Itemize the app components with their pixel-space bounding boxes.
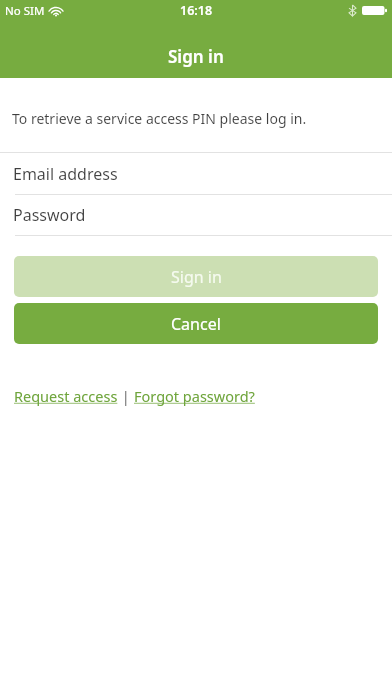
staticText: Password (13, 204, 86, 226)
staticText: | (118, 386, 134, 406)
staticText: No SIM (5, 3, 45, 19)
staticText: Cancel (171, 313, 221, 335)
staticText: Sign in (168, 45, 224, 68)
button[interactable]: Sign in (14, 256, 378, 297)
button[interactable]: Forgot password? (134, 386, 255, 406)
button[interactable]: Password (0, 195, 392, 235)
staticText: Sign in (171, 266, 222, 288)
staticText: 16:18 (180, 2, 213, 19)
staticText: To retrieve a service access PIN please … (12, 109, 307, 128)
button[interactable]: Request access (14, 386, 118, 406)
button[interactable]: Email address (0, 153, 392, 194)
staticText: Email address (13, 163, 118, 185)
button[interactable]: Cancel (14, 303, 378, 344)
